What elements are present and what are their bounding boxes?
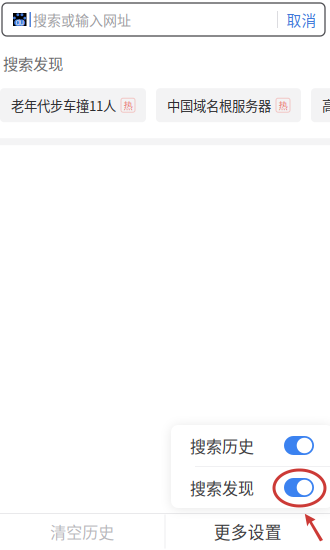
staticText: 更多设置 <box>214 519 282 543</box>
staticText: 热 <box>278 98 287 112</box>
button[interactable]: 清空历史 <box>0 513 164 550</box>
staticText: 取消 <box>286 9 316 30</box>
button[interactable]: 中国域名根服务器 <box>156 88 301 122</box>
staticText: 清空历史 <box>50 520 114 543</box>
button[interactable]: 老年代步车撞11人 <box>0 88 146 122</box>
button[interactable]: 搜索发现 <box>171 467 330 508</box>
staticText: 搜索发现 <box>3 52 63 74</box>
button[interactable]: 更多设置 <box>165 513 330 550</box>
staticText: du <box>16 18 24 27</box>
staticText: 老年代步车撞11人 <box>11 95 116 115</box>
button[interactable]: 搜索历史 <box>171 425 330 466</box>
staticText: 搜索发现 <box>190 476 254 499</box>
staticText: 搜索历史 <box>190 434 254 457</box>
staticText: 高铁霸座 <box>322 95 330 115</box>
button[interactable]: 取消 <box>278 3 325 35</box>
button[interactable]: 高铁霸座 <box>311 88 330 122</box>
staticText: 热 <box>123 98 132 112</box>
staticText: 中国域名根服务器 <box>167 95 271 115</box>
staticText: 搜索或输入网址 <box>33 9 131 30</box>
